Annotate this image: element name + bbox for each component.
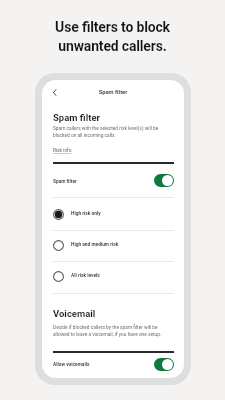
button[interactable]: Risk info — [53, 148, 72, 154]
button[interactable]: High and medium risk — [53, 230, 174, 260]
staticText: High risk only — [71, 211, 101, 217]
button[interactable]: Back — [47, 85, 61, 99]
staticText: Decide if blocked callers by the spam fi… — [53, 325, 174, 337]
staticText: Risk info — [53, 148, 72, 154]
staticText: Spam callers with the selected risk leve… — [53, 126, 174, 138]
button[interactable]: Spam filter — [53, 164, 174, 197]
staticText: Spam filter — [42, 89, 184, 96]
staticText: Spam filter — [53, 112, 100, 123]
staticText: Use filters to block unwanted callers. — [0, 19, 225, 55]
staticText: Spam filter — [53, 179, 77, 185]
staticText: High and medium risk — [71, 242, 119, 248]
button[interactable]: High risk only — [53, 199, 174, 229]
staticText: All risk levels — [71, 273, 100, 279]
staticText: Allow voicemails — [53, 362, 90, 368]
button[interactable]: All risk levels — [53, 261, 174, 291]
staticText: Voicemail — [53, 308, 96, 319]
button[interactable]: Allow voicemails — [53, 353, 174, 375]
